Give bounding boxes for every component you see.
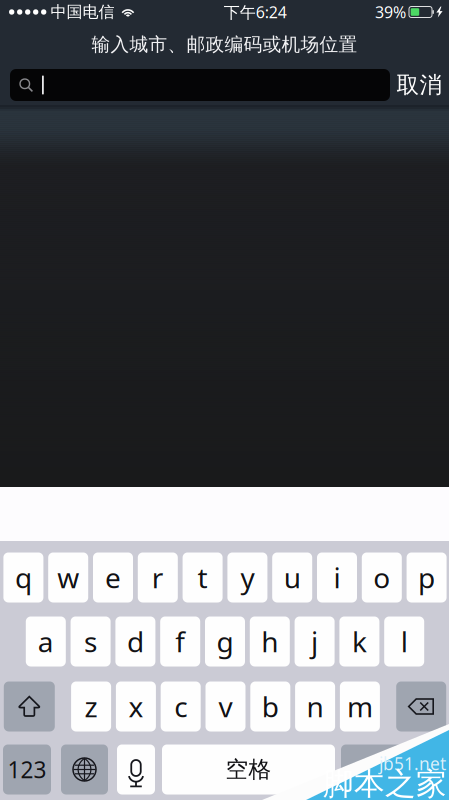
staticText: b	[262, 688, 279, 725]
staticText: u	[284, 559, 301, 596]
staticText: 空格	[225, 756, 271, 783]
staticText: y	[240, 559, 254, 596]
button[interactable]: 取消	[390, 69, 449, 101]
button[interactable]: f	[160, 616, 200, 666]
button[interactable]: Dictate	[117, 744, 155, 794]
button[interactable]: Switch keyboard	[61, 744, 108, 794]
button[interactable]: w	[48, 552, 88, 602]
staticText: 123	[7, 754, 46, 784]
staticText: k	[352, 623, 367, 660]
button[interactable]: h	[250, 616, 290, 666]
staticText: w	[57, 559, 79, 596]
button[interactable]: m	[340, 681, 380, 731]
button[interactable]: Delete	[396, 681, 446, 731]
staticText: 脚本之家	[323, 765, 447, 800]
staticText: v	[218, 688, 232, 725]
button[interactable]: 搜索	[341, 744, 447, 794]
button[interactable]: o	[362, 552, 402, 602]
staticText: c	[174, 688, 187, 725]
staticText: jb51.net	[379, 752, 446, 775]
button[interactable]: x	[116, 681, 156, 731]
staticText: 搜索	[371, 756, 417, 783]
staticText: x	[128, 688, 143, 725]
staticText: j	[311, 623, 318, 660]
staticText: 中国电信	[50, 2, 114, 22]
staticText: i	[333, 559, 340, 596]
button[interactable]: k	[339, 616, 379, 666]
staticText: d	[127, 623, 144, 660]
button[interactable]: s	[71, 616, 111, 666]
button[interactable]: q	[3, 552, 43, 602]
button[interactable]: v	[205, 681, 245, 731]
button[interactable]: i	[317, 552, 357, 602]
button[interactable]: a	[26, 616, 66, 666]
staticText: g	[216, 623, 233, 660]
staticText: p	[418, 559, 435, 596]
staticText: m	[347, 688, 373, 725]
button[interactable]: z	[71, 681, 111, 731]
staticText: t	[198, 559, 208, 596]
button[interactable]: e	[93, 552, 133, 602]
staticText: 下午6:24	[224, 1, 287, 23]
staticText: 39%	[375, 1, 406, 23]
button[interactable]: u	[272, 552, 312, 602]
staticText: z	[85, 688, 98, 725]
staticText: a	[38, 623, 54, 660]
staticText: 输入城市、邮政编码或机场位置	[91, 33, 357, 56]
button[interactable]: b	[250, 681, 290, 731]
staticText: 取消	[396, 71, 442, 99]
staticText: f	[175, 623, 185, 660]
button[interactable]: n	[295, 681, 335, 731]
button[interactable]: p	[407, 552, 447, 602]
button[interactable]: d	[115, 616, 155, 666]
staticText: s	[84, 623, 97, 660]
staticText: e	[105, 559, 121, 596]
button[interactable]: g	[205, 616, 245, 666]
button[interactable]: 空格	[162, 744, 335, 794]
button[interactable]: r	[138, 552, 178, 602]
button[interactable]: Shift	[4, 681, 55, 731]
staticText: q	[15, 559, 32, 596]
button[interactable]: c	[161, 681, 201, 731]
staticText: r	[152, 559, 164, 596]
button[interactable]: 123	[3, 744, 51, 794]
button[interactable]: l	[384, 616, 424, 666]
button[interactable]: y	[227, 552, 267, 602]
button[interactable]: t	[183, 552, 223, 602]
staticText: h	[261, 623, 278, 660]
button[interactable]: j	[295, 616, 335, 666]
staticText: o	[373, 559, 390, 596]
staticText: n	[307, 688, 324, 725]
staticText: l	[401, 623, 408, 660]
